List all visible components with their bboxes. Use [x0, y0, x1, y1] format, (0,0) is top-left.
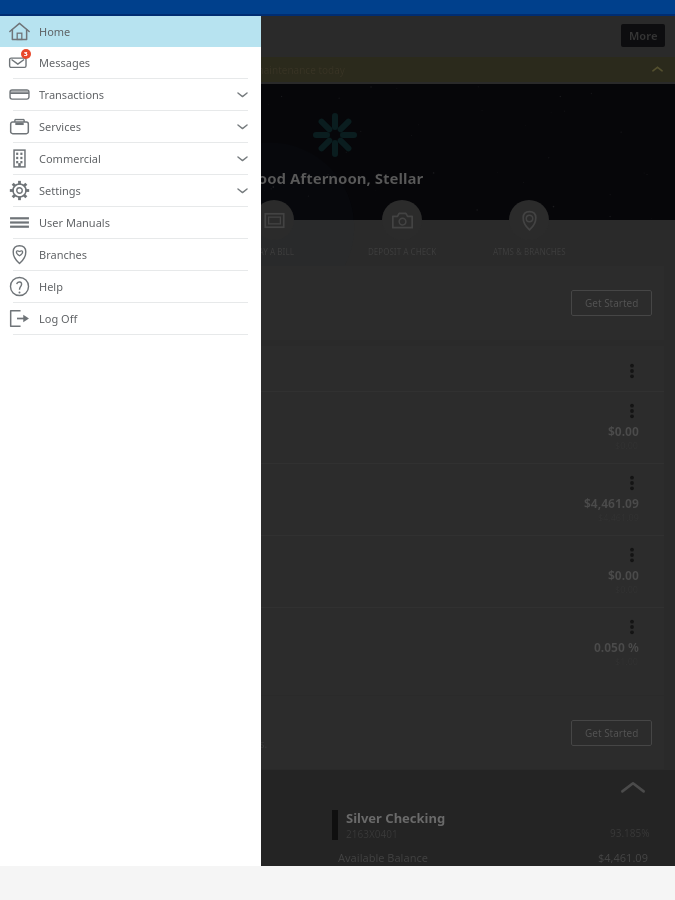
button[interactable]: Help — [0, 271, 261, 302]
button[interactable]: Home — [0, 16, 261, 47]
staticText: 2163X0401 — [346, 827, 398, 841]
other: More options — [625, 403, 639, 419]
button[interactable]: Premier Savings — [0, 391, 675, 463]
staticText: Connect accounts at other banks and cred… — [26, 737, 268, 751]
button[interactable]: Money Market — [0, 535, 675, 607]
staticText: Available Balance — [338, 850, 428, 865]
staticText: Good Afternoon, Stellar — [247, 168, 424, 188]
button[interactable]: Branches — [0, 239, 261, 270]
staticText: PAY A BILL — [254, 246, 294, 257]
button[interactable]: Get Started — [571, 720, 652, 746]
staticText: 0.050 % — [594, 639, 639, 655]
staticText: $4,461.09 — [598, 850, 648, 865]
button[interactable]: Get Started — [571, 290, 652, 316]
staticText: $0.00 — [608, 423, 639, 439]
button[interactable]: DEPOSIT A CHECK — [352, 200, 452, 262]
other: More options — [625, 363, 639, 379]
button[interactable]: Commercial — [0, 143, 261, 174]
staticText: Log Off — [39, 311, 78, 326]
button[interactable]: 3 — [0, 47, 261, 78]
button[interactable]: Transactions — [0, 79, 261, 110]
staticText: Track, budget and manage your finances. — [26, 308, 221, 322]
staticText: Settings — [39, 183, 81, 198]
other: Dismiss — [652, 64, 663, 75]
staticText: Home — [39, 24, 71, 39]
other: More options — [625, 475, 639, 491]
staticText: Get Started — [585, 296, 639, 310]
staticText: More — [629, 28, 658, 43]
other: Collapse — [619, 774, 647, 802]
staticText: User Manuals — [39, 215, 110, 230]
staticText: Get Started — [585, 726, 639, 740]
button[interactable]: PAY A BILL — [224, 200, 324, 262]
button[interactable]: Settings — [0, 175, 261, 206]
staticText: ATMS & BRANCHES — [493, 246, 566, 257]
button[interactable]: ATMS & BRANCHES — [479, 200, 579, 262]
button[interactable]: User Manuals — [0, 207, 261, 238]
staticText: Scheduled maintenance today — [203, 63, 345, 77]
staticText: 3 — [24, 50, 28, 58]
staticText: Messages — [39, 55, 91, 70]
button[interactable]: More — [621, 24, 665, 47]
other: More options — [625, 547, 639, 563]
button[interactable]: Silver Checking — [0, 463, 675, 535]
staticText: Services — [39, 119, 81, 134]
staticText: 93.185% — [610, 826, 650, 840]
staticText: DEPOSIT A CHECK — [368, 246, 437, 257]
staticText: $4,461.09 — [584, 495, 639, 511]
staticText: $0.00 — [608, 567, 639, 583]
button[interactable]: Services — [0, 111, 261, 142]
staticText: Financial Wellness — [26, 285, 145, 303]
staticText: Transactions — [39, 87, 105, 102]
staticText: Silver Checking — [346, 809, 446, 827]
button[interactable]: Certificate 24 Mo — [0, 607, 675, 679]
button[interactable]: Log Off — [0, 303, 261, 334]
staticText: Branches — [39, 247, 87, 262]
staticText: Commercial — [39, 151, 101, 166]
staticText: Help — [39, 279, 63, 294]
other: More options — [625, 619, 639, 635]
